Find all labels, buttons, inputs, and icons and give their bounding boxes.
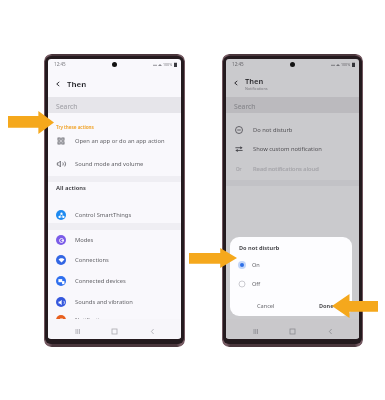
button[interactable]: Recents (72, 326, 82, 336)
staticText: 12:45 (54, 61, 66, 67)
staticText: Do not disturb (239, 244, 280, 252)
staticText: Connected devices (75, 277, 126, 285)
staticText: Connections (75, 256, 109, 264)
staticText: Notifications (245, 86, 268, 91)
button[interactable]: Do not disturb (226, 120, 359, 139)
button[interactable]: Search (48, 97, 181, 113)
button[interactable]: Cancel (230, 297, 301, 314)
button[interactable]: Notifications (48, 310, 181, 329)
staticText: Show custom notification (253, 145, 322, 153)
button[interactable]: Sound mode and volume (48, 154, 181, 173)
staticText: Or (236, 166, 242, 172)
button[interactable]: Connections (48, 250, 181, 269)
button[interactable]: Show custom notification (226, 139, 359, 158)
button[interactable]: Sounds and vibration (48, 292, 181, 311)
other: Back (232, 79, 240, 87)
staticText: Sounds and vibration (75, 298, 133, 306)
button[interactable]: Home (287, 326, 297, 336)
staticText: Control SmartThings (75, 211, 132, 219)
button[interactable]: Back (147, 326, 157, 336)
staticText: All actions (56, 184, 86, 192)
button[interactable]: Open an app or do an app action (48, 131, 181, 150)
button[interactable]: Done (301, 297, 352, 314)
staticText: Try these actions (56, 124, 94, 130)
button[interactable]: Back (325, 326, 335, 336)
staticText: Then (67, 79, 87, 90)
staticText: On (252, 261, 260, 269)
staticText: 12:45 (232, 61, 244, 67)
staticText: Off (252, 280, 261, 288)
button[interactable]: Or (226, 159, 359, 178)
button[interactable]: On (230, 259, 352, 271)
button[interactable]: Recents (250, 326, 260, 336)
staticText: Read notifications aloud (253, 165, 319, 173)
button[interactable]: Connected devices (48, 271, 181, 290)
button[interactable]: Search (226, 97, 359, 113)
staticText: 100% (163, 62, 173, 67)
staticText: Done (319, 302, 334, 310)
button[interactable]: Control SmartThings (48, 205, 181, 224)
button[interactable]: Home (109, 326, 119, 336)
staticText: 100% (341, 62, 351, 67)
other: Back (54, 80, 62, 88)
button[interactable]: Off (230, 278, 352, 290)
staticText: Do not disturb (253, 126, 293, 134)
button[interactable]: Back (48, 74, 181, 94)
staticText: Search (234, 102, 256, 111)
staticText: Cancel (257, 302, 275, 310)
staticText: Then (245, 76, 264, 86)
button[interactable]: Back (226, 73, 359, 93)
staticText: Open an app or do an app action (75, 137, 165, 145)
staticText: Notifications (75, 316, 110, 324)
staticText: Search (56, 102, 78, 111)
button[interactable]: Modes (48, 230, 181, 249)
staticText: Sound mode and volume (75, 160, 144, 168)
staticText: Modes (75, 236, 94, 244)
